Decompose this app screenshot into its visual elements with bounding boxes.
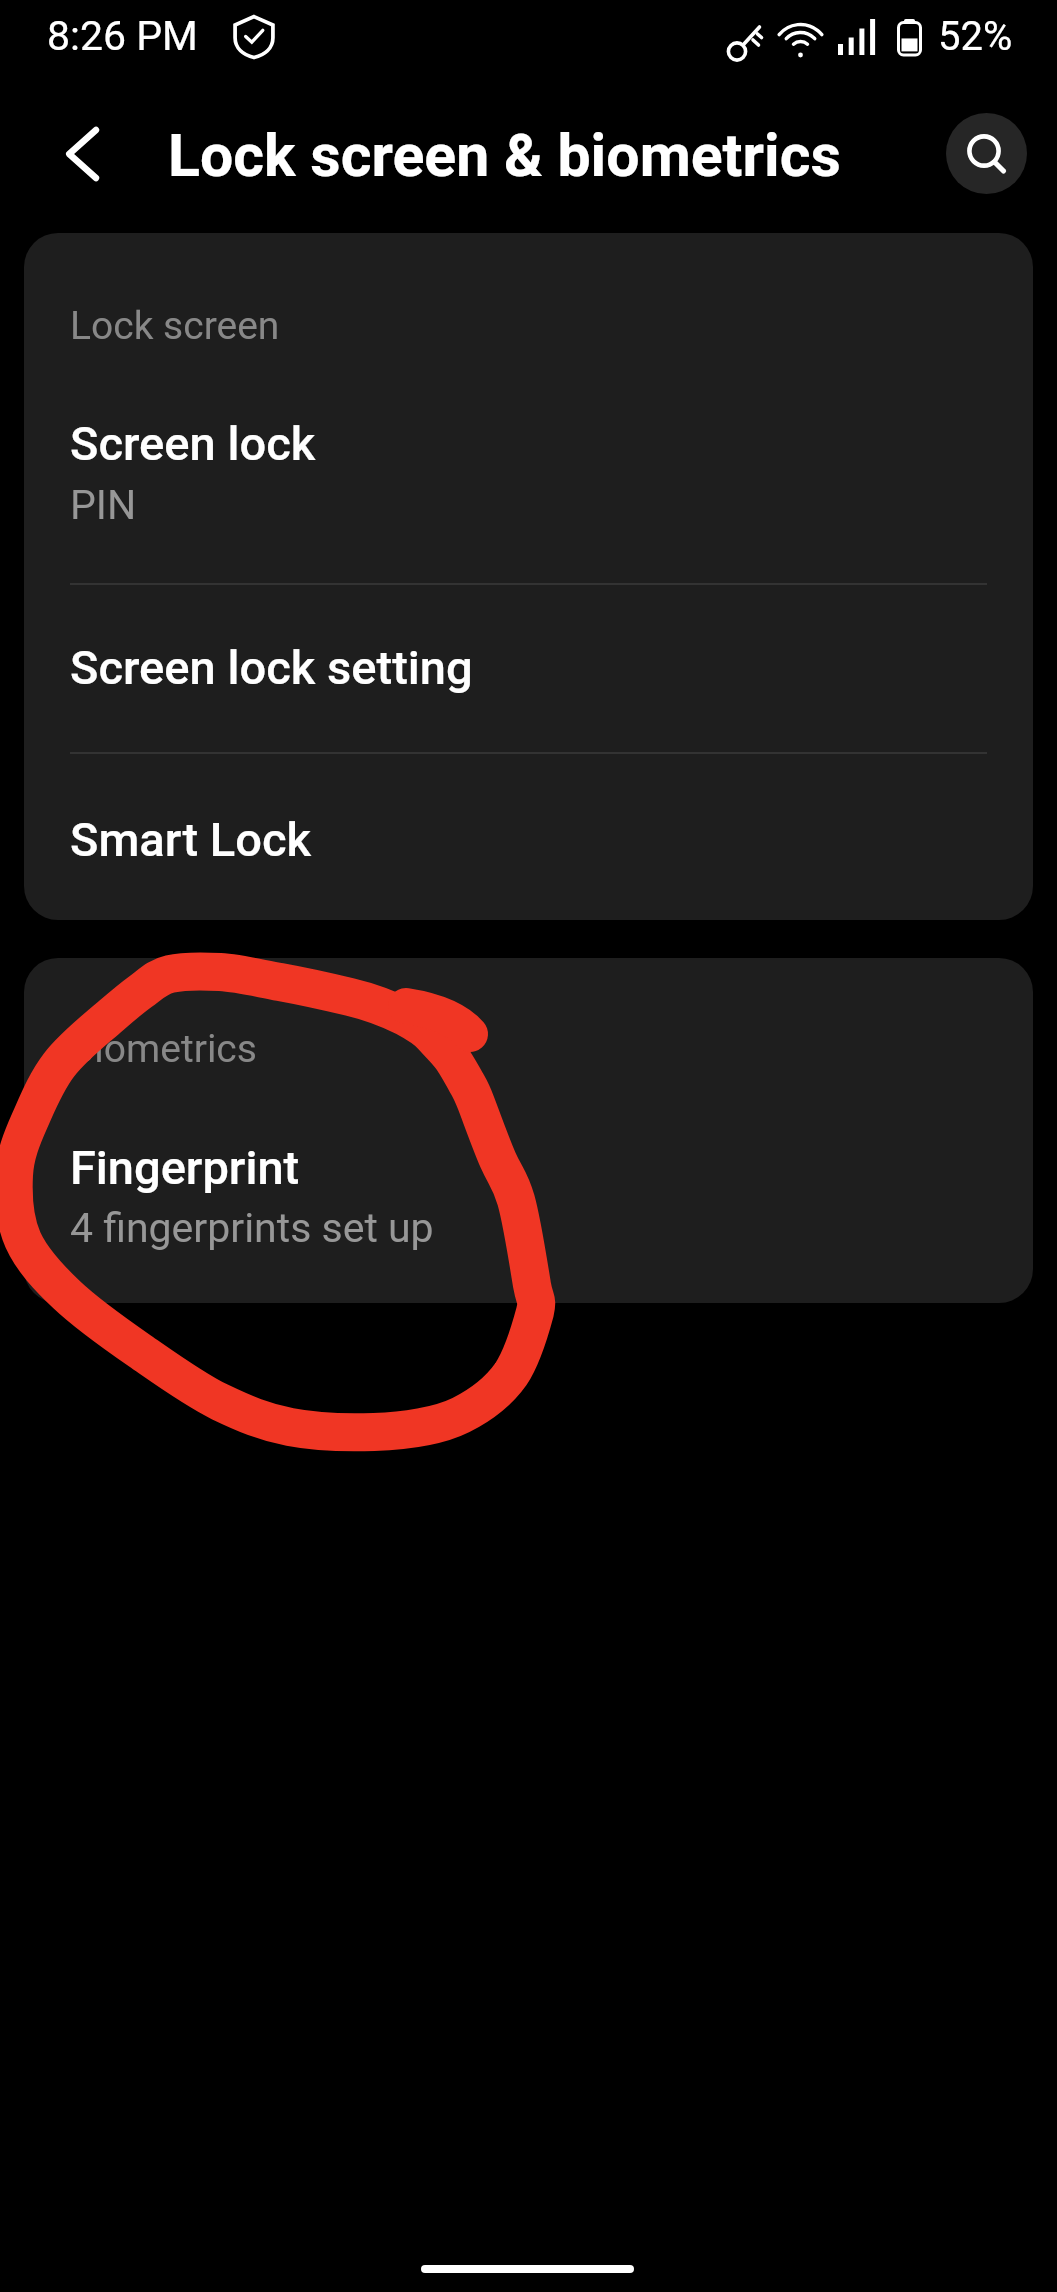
button[interactable]: Fingerprint (24, 1075, 1033, 1303)
staticText: 8:26 PM (47, 12, 198, 60)
button[interactable]: Search (946, 113, 1027, 194)
staticText: 4 fingerprints set up (70, 1204, 434, 1252)
staticText: Fingerprint (70, 1140, 300, 1195)
staticText: Screen lock (70, 416, 316, 471)
staticText: Biometrics (70, 1026, 257, 1072)
button[interactable]: Screen lock setting (24, 585, 1033, 752)
button[interactable]: Back (40, 110, 128, 198)
staticText: PIN (70, 481, 137, 529)
staticText: 52% (938, 13, 1013, 60)
staticText: Smart Lock (70, 812, 312, 867)
button[interactable]: Screen lock (24, 353, 1033, 583)
button[interactable]: Smart Lock (24, 754, 1033, 920)
staticText: Lock screen & biometrics (168, 121, 841, 190)
staticText: Screen lock setting (70, 640, 473, 695)
staticText: Lock screen (70, 303, 280, 349)
